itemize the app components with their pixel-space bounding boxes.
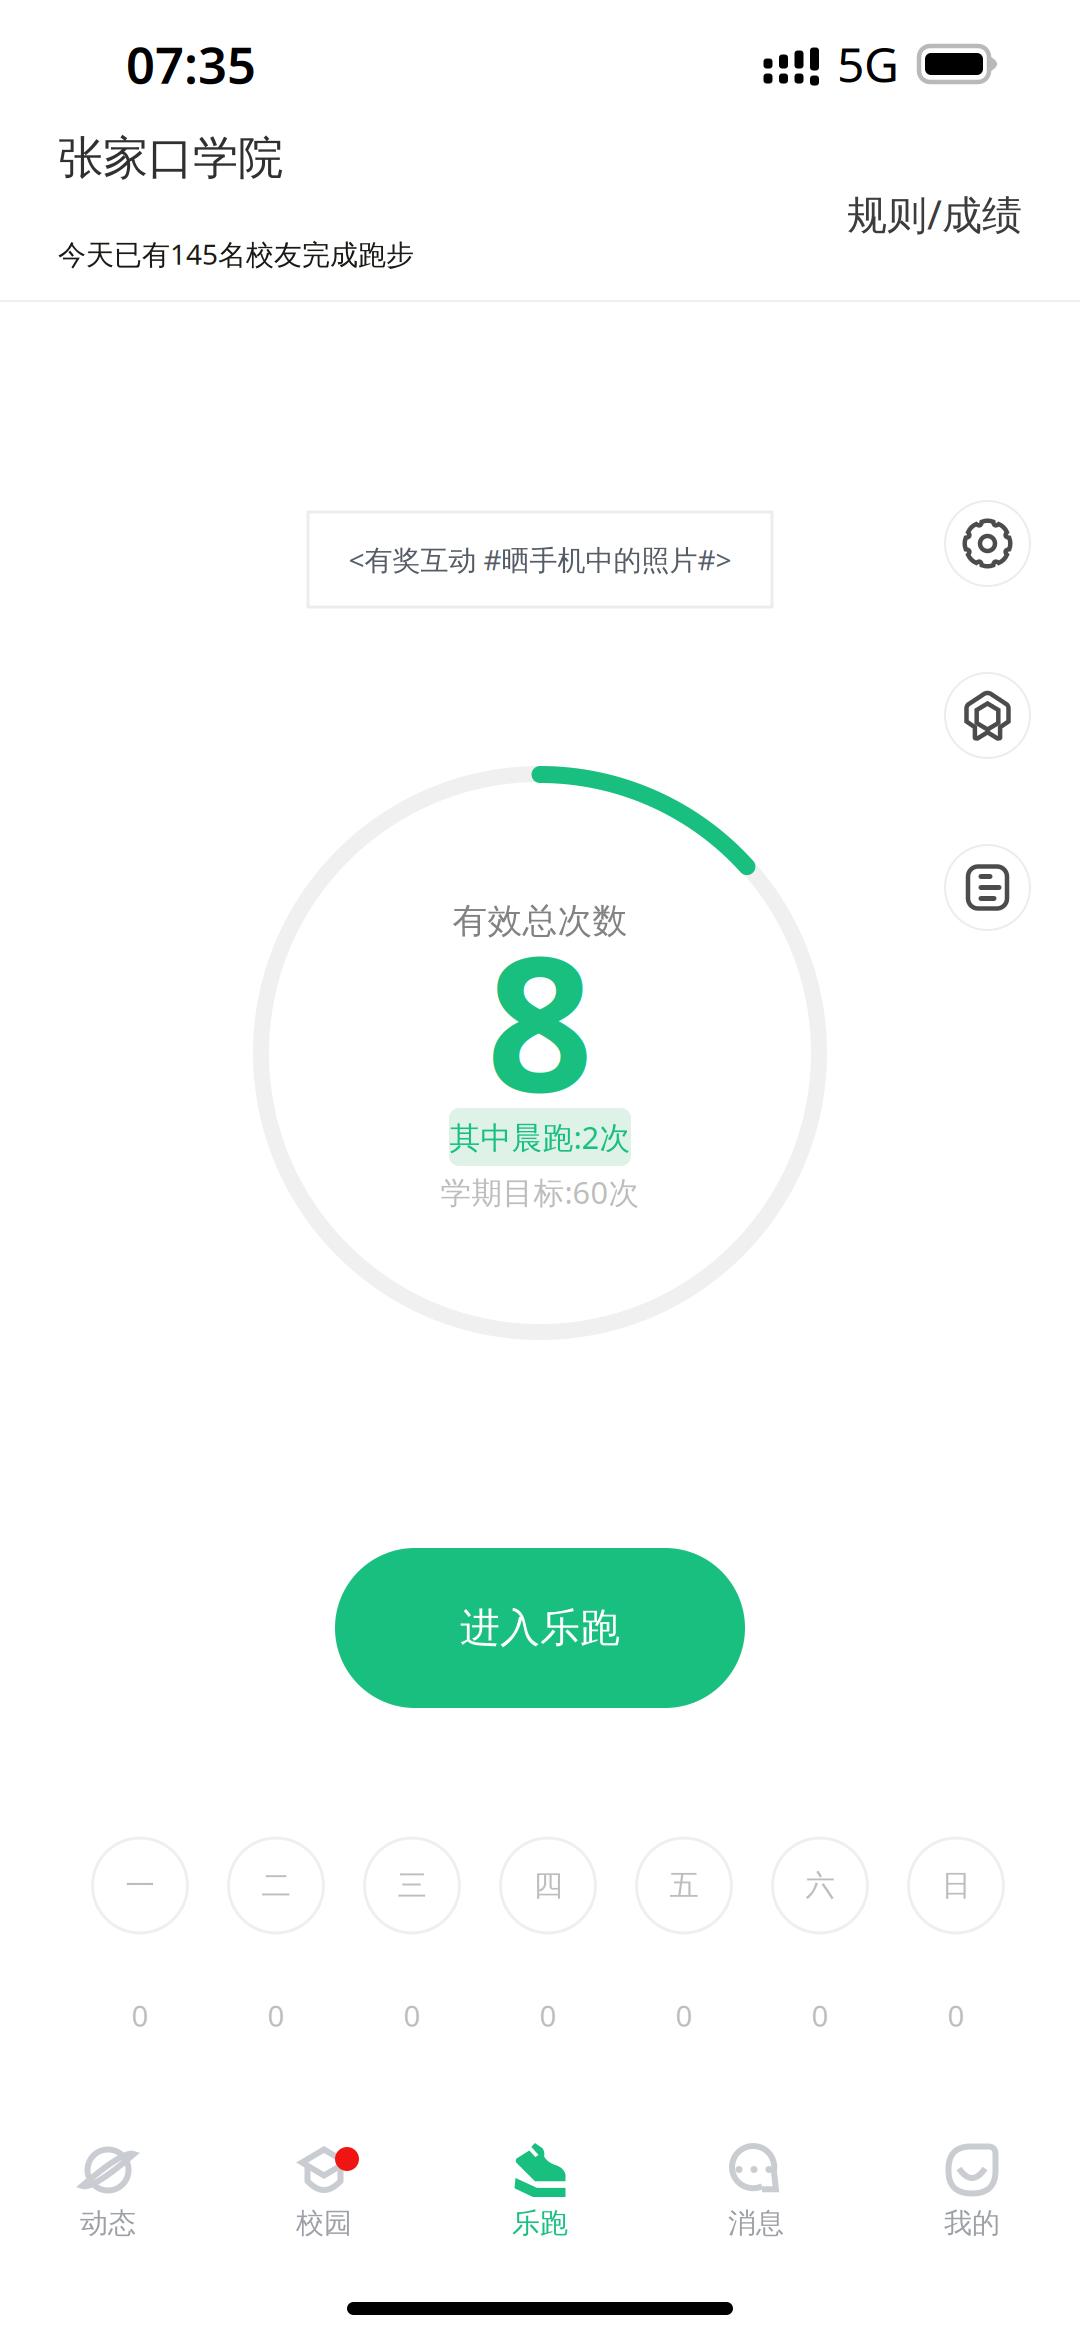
staticText: 有效总次数 xyxy=(452,900,627,942)
staticText: <有奖互动 #晒手机中的照片#> xyxy=(348,541,731,578)
button[interactable]: 我的 xyxy=(864,2100,1080,2252)
staticText: 0 xyxy=(131,1996,148,2035)
staticText: 进入乐跑 xyxy=(460,1603,620,1652)
staticText: 0 xyxy=(539,1996,556,2035)
staticText: 校园 xyxy=(296,2206,352,2240)
staticText: 乐跑 xyxy=(512,2206,568,2240)
button[interactable]: 动态 xyxy=(0,2100,216,2252)
button[interactable]: 消息 xyxy=(648,2100,864,2252)
staticText: 规则/成绩 xyxy=(847,187,1022,240)
button[interactable]: 校园 xyxy=(216,2100,432,2252)
button[interactable]: 进入乐跑 xyxy=(335,1548,745,1708)
staticText: 日 xyxy=(941,1867,970,1903)
staticText: 0 xyxy=(811,1996,828,2035)
staticText: 学期目标:60次 xyxy=(440,1172,639,1212)
staticText: 今天已有145名校友完成跑步 xyxy=(58,235,414,273)
staticText: 0 xyxy=(947,1996,964,2035)
button[interactable]: 记录 xyxy=(945,845,1030,930)
staticText: 07:35 xyxy=(126,30,256,98)
staticText: 五 xyxy=(669,1867,698,1903)
staticText: 一 xyxy=(125,1867,154,1903)
staticText: 三 xyxy=(397,1867,426,1903)
staticText: 0 xyxy=(267,1996,284,2035)
staticText: 张家口学院 xyxy=(58,130,283,186)
staticText: 我的 xyxy=(944,2206,1000,2240)
button[interactable]: 成就 xyxy=(945,673,1030,758)
staticText: 二 xyxy=(261,1867,290,1903)
staticText: 0 xyxy=(675,1996,692,2035)
staticText: 5G xyxy=(837,32,899,96)
staticText: 动态 xyxy=(80,2206,136,2240)
button[interactable]: 规则/成绩 xyxy=(833,177,1036,250)
button[interactable]: <有奖互动 #晒手机中的照片#> xyxy=(308,512,772,607)
button[interactable]: 设置 xyxy=(945,501,1030,586)
staticText: 六 xyxy=(805,1867,834,1903)
staticText: 消息 xyxy=(728,2206,784,2240)
button[interactable]: 乐跑 xyxy=(432,2100,648,2252)
staticText: 0 xyxy=(403,1996,420,2035)
staticText: 其中晨跑:2次 xyxy=(449,1117,630,1157)
staticText: 四 xyxy=(533,1867,562,1903)
staticText: 8 xyxy=(486,895,593,1143)
